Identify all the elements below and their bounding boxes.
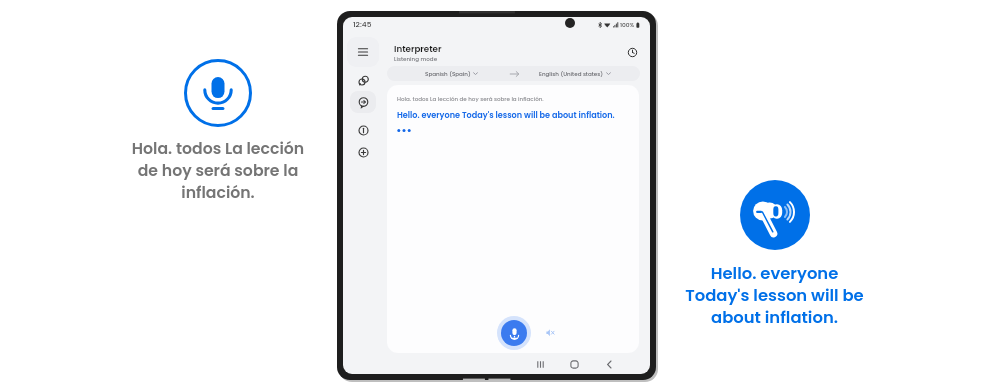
staticText: Listening mode [394,55,438,63]
staticText: Hello. everyone Today's lesson will be a… [397,109,615,120]
button[interactable]: Spanish (Spain) [387,66,640,81]
button[interactable]: Mute sound [544,326,557,339]
button[interactable]: History [624,44,641,61]
button[interactable]: Translate [350,69,376,91]
staticText: Spanish (Spain) [425,70,471,78]
staticText: 100% [620,21,635,29]
staticText: Hola. todos La lección de hoy será sobre… [118,138,318,204]
button[interactable]: Menu [347,37,379,67]
staticText: English (United states) [539,70,604,78]
button[interactable]: Information [350,119,376,141]
button[interactable]: Microphone [497,316,531,350]
button[interactable]: Add [350,141,376,163]
button[interactable]: Interpreter [350,91,376,113]
staticText: Hola. todos La lección de hoy será sobre… [397,95,544,103]
staticText: 12:45 [353,19,372,29]
button[interactable]: Home [565,355,583,373]
button[interactable]: Recents [531,355,549,373]
staticText: Hello. everyone Today's lesson will be a… [666,262,883,329]
button[interactable]: Back [600,355,618,373]
staticText: Interpreter [394,43,442,55]
